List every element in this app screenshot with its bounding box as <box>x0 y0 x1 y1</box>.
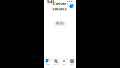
button[interactable]: Alerts <box>60 59 68 65</box>
staticText: Chats <box>46 63 50 65</box>
staticText: ••• <box>67 0 73 4</box>
button[interactable]: Chats <box>44 59 52 65</box>
staticText: Search <box>53 63 59 65</box>
staticText: Conversations <box>52 1 67 11</box>
button[interactable]: New <box>69 4 74 9</box>
button[interactable]: Search <box>52 59 60 65</box>
staticText: Hello <box>56 22 64 25</box>
staticText: 9:41 <box>47 0 54 4</box>
button[interactable]: More <box>68 59 76 65</box>
staticText: Alerts <box>62 63 66 65</box>
staticText: More <box>70 63 74 65</box>
